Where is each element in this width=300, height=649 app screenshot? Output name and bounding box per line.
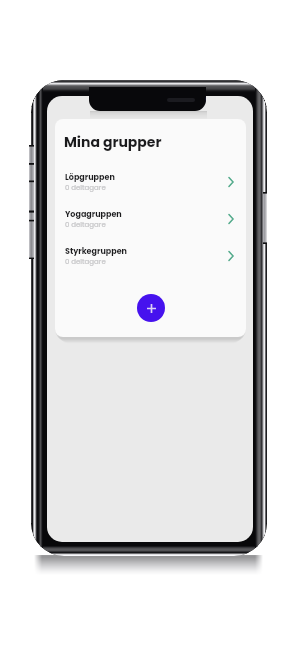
button[interactable]: Yogagruppen <box>55 206 246 232</box>
button[interactable]: Styrkegruppen <box>55 243 246 269</box>
staticText: 0 deltagare <box>65 183 106 193</box>
staticText: Mina grupper <box>64 132 162 152</box>
staticText: Löpgruppen <box>65 172 115 183</box>
staticText: 0 deltagare <box>65 220 106 230</box>
button[interactable]: Löpgruppen <box>55 169 246 195</box>
staticText: Yogagruppen <box>65 209 122 220</box>
staticText: 0 deltagare <box>65 257 106 267</box>
button[interactable]: Add group <box>137 294 165 322</box>
staticText: Styrkegruppen <box>65 246 127 257</box>
